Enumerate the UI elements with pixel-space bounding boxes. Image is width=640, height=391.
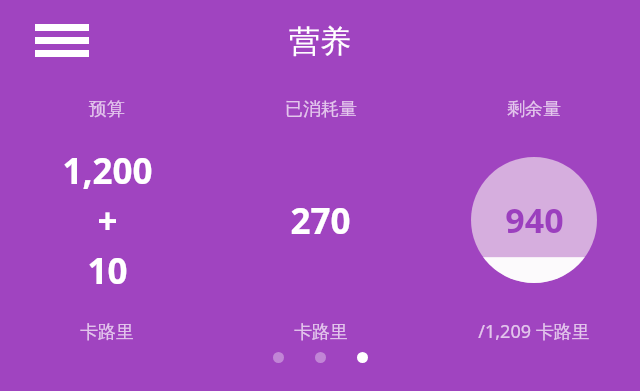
button[interactable]: Menu	[22, 11, 102, 69]
staticText: 营养	[289, 22, 351, 61]
button[interactable]: Page	[268, 347, 288, 367]
button[interactable]: 已消耗量	[214, 98, 427, 348]
staticText: 270	[290, 197, 351, 245]
staticText: +	[97, 197, 118, 245]
staticText: /1,209 卡路里	[478, 319, 590, 344]
staticText: 940	[505, 197, 564, 243]
button[interactable]: Page	[310, 347, 330, 367]
staticText: 预算	[89, 98, 125, 121]
button[interactable]: Page 3, current	[352, 347, 372, 367]
button[interactable]: 预算	[0, 98, 214, 348]
staticText: 卡路里	[294, 321, 348, 344]
staticText: 卡路里	[80, 321, 134, 344]
staticText: 剩余量	[507, 98, 561, 121]
button[interactable]: 剩余量	[427, 98, 640, 348]
staticText: 10	[87, 247, 128, 295]
staticText: 已消耗量	[285, 98, 357, 121]
staticText: 1,200	[62, 147, 153, 195]
